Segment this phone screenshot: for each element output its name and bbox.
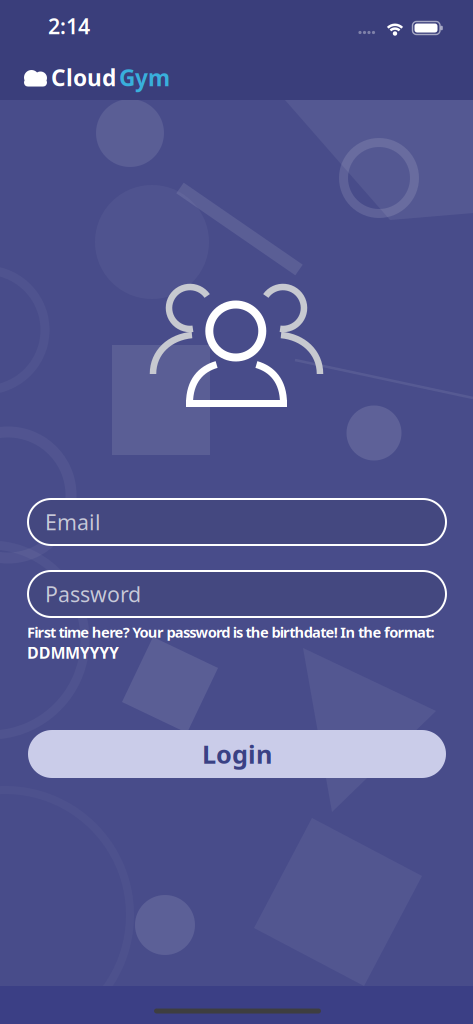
staticText: 2:14: [48, 12, 90, 40]
staticText: Password: [45, 580, 141, 608]
staticText: Gym: [119, 62, 170, 92]
staticText: Email: [45, 508, 101, 536]
button[interactable]: Email: [28, 499, 446, 545]
staticText: Cloud: [51, 62, 116, 92]
button[interactable]: Login: [28, 730, 446, 778]
button[interactable]: Password: [28, 571, 446, 617]
staticText: First time here? Your password is the bi…: [27, 622, 434, 642]
staticText: Login: [202, 737, 272, 771]
staticText: DDMMYYYY: [27, 642, 119, 663]
